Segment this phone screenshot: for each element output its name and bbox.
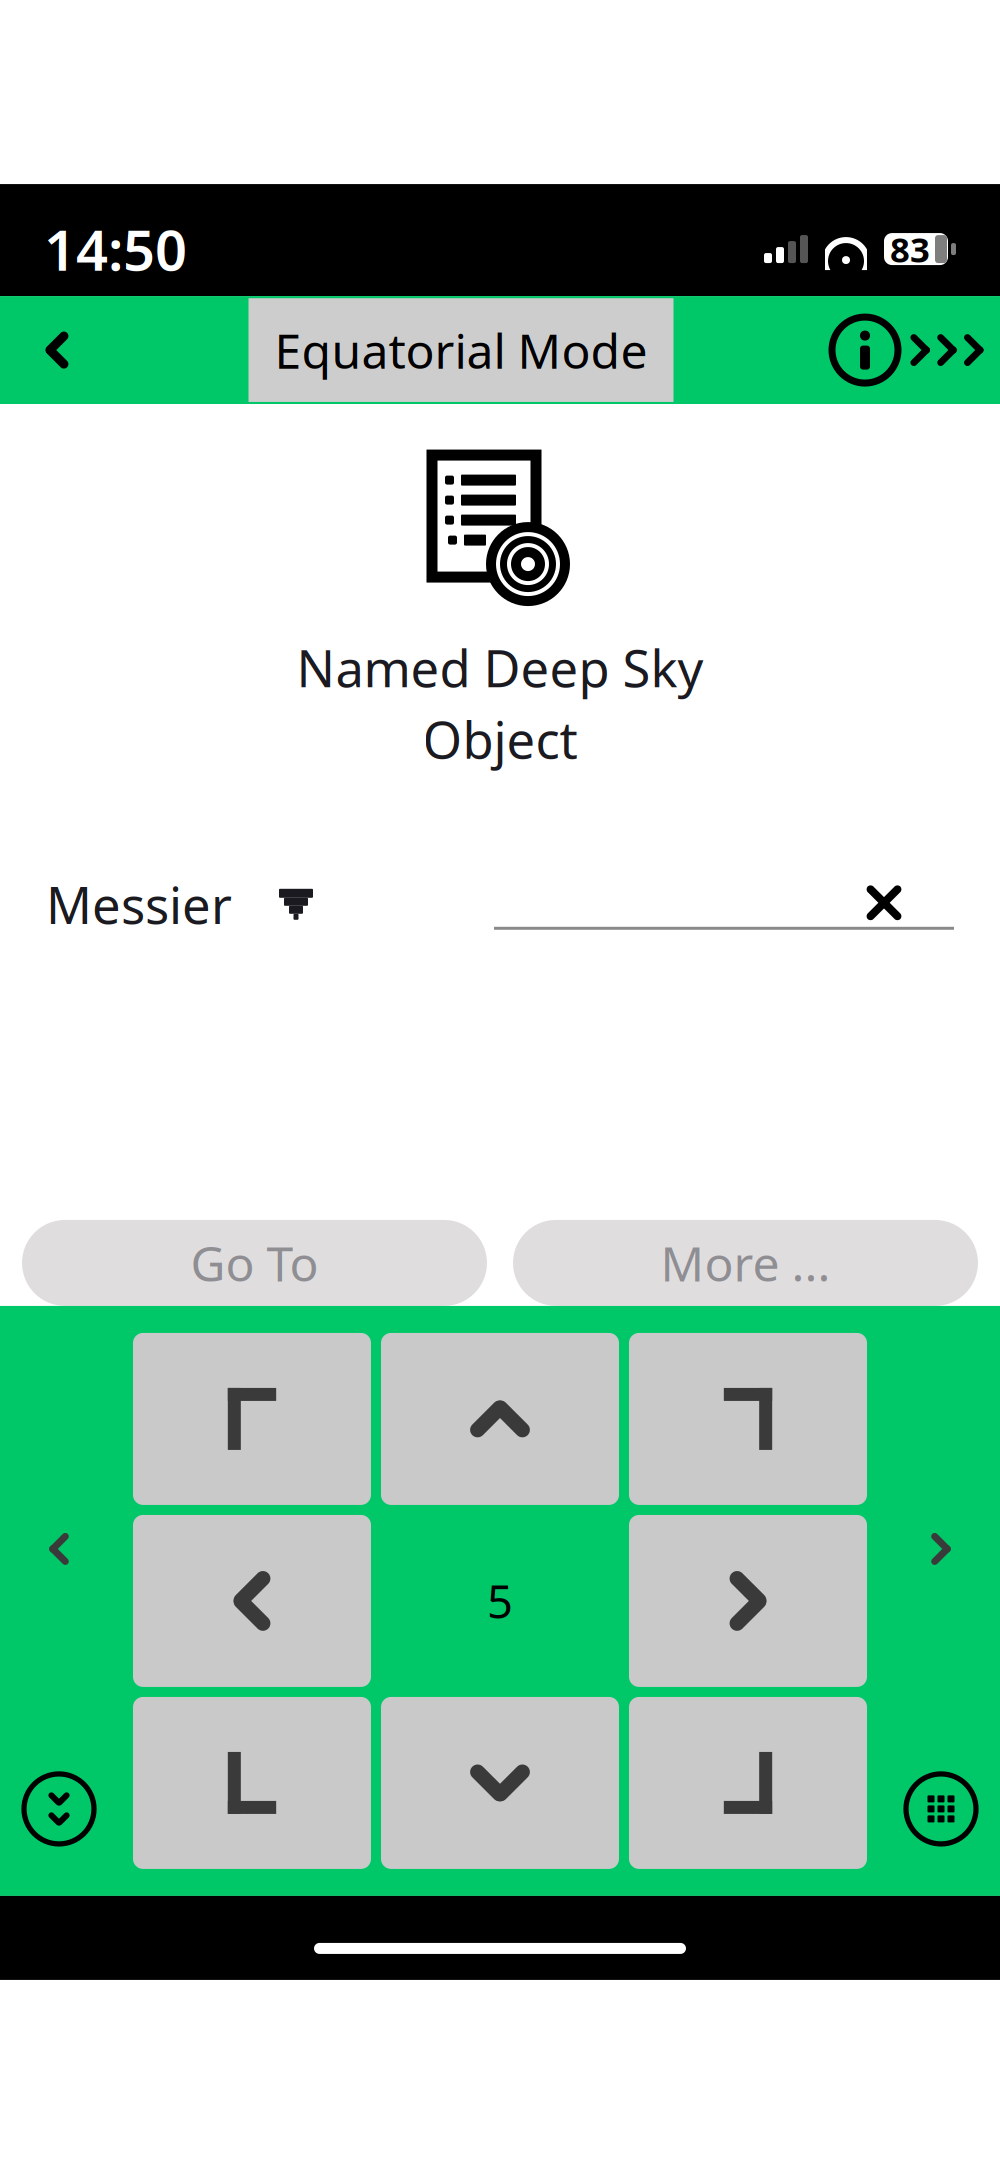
staticText: More ... [660,1231,830,1295]
button[interactable] [381,1697,619,1869]
staticText: Messier [46,871,232,938]
button[interactable]: More options [908,296,986,404]
staticText: 14:50 [44,212,187,286]
button[interactable]: Back [14,296,100,404]
button[interactable]: Information [822,296,908,404]
button[interactable] [629,1333,867,1505]
button[interactable] [133,1697,371,1869]
button[interactable]: Clear search text [494,879,954,930]
staticText: Object [422,705,577,773]
button[interactable] [629,1515,867,1687]
staticText: 5 [487,1571,513,1631]
button[interactable] [381,1333,619,1505]
button[interactable]: More ... [513,1220,978,1306]
button[interactable]: Previous [20,1510,98,1588]
button[interactable] [133,1515,371,1687]
button[interactable]: Next [902,1510,980,1588]
button[interactable]: Collapse panel [24,1774,94,1844]
staticText: Go To [190,1231,318,1295]
staticText: Equatorial Mode [274,318,647,382]
button[interactable] [133,1333,371,1505]
button[interactable] [629,1697,867,1869]
button[interactable]: Keypad [906,1774,976,1844]
button[interactable]: Equatorial Mode [248,298,673,402]
staticText: Named Deep Sky [296,634,703,701]
button[interactable]: Messier [46,857,316,952]
staticText: 83 [890,226,930,272]
button[interactable]: Go To [22,1220,487,1306]
